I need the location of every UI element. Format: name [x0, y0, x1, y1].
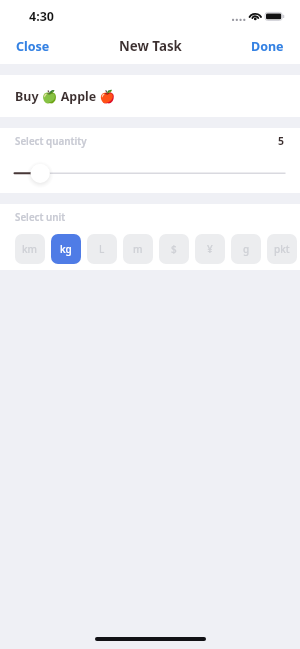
button[interactable]: m [123, 234, 153, 264]
button[interactable]: ¥ [195, 234, 225, 264]
staticText: L [99, 242, 105, 256]
button[interactable]: g [231, 234, 261, 264]
staticText: km [22, 242, 38, 256]
staticText: Done [251, 38, 284, 55]
button[interactable]: km [15, 234, 45, 264]
staticText: m [133, 242, 143, 256]
staticText: pkt [274, 242, 290, 256]
button[interactable]: Quantity slider [0, 159, 300, 187]
staticText: Buy 🍏 Apple 🍎 [15, 88, 116, 105]
staticText: 5 [278, 134, 285, 148]
button[interactable]: $ [159, 234, 189, 264]
staticText: kg [60, 242, 72, 256]
staticText: g [243, 242, 250, 256]
button[interactable]: Buy 🍏 Apple 🍎 [0, 75, 300, 117]
button[interactable]: Close [0, 28, 64, 64]
button[interactable]: L [87, 234, 117, 264]
button[interactable]: kg [51, 234, 81, 264]
other: Cellular, Wi-Fi and battery status [232, 10, 284, 24]
staticText: 4:30 [29, 8, 54, 25]
staticText: New Task [119, 37, 182, 55]
staticText: Select unit [15, 211, 66, 224]
staticText: Select quantity [15, 135, 87, 148]
button[interactable]: pkt [267, 234, 297, 264]
staticText: Close [16, 38, 50, 55]
staticText: $ [171, 242, 177, 256]
staticText: ¥ [207, 242, 213, 256]
button[interactable]: Done [237, 28, 300, 64]
